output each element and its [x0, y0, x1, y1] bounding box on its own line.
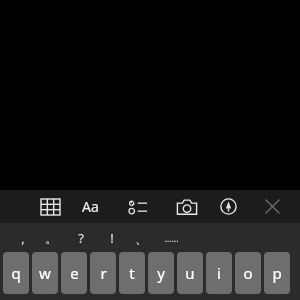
button[interactable]: u: [177, 252, 203, 294]
button[interactable]: t: [119, 252, 145, 294]
staticText: !: [110, 229, 114, 247]
button[interactable]: y: [148, 252, 174, 294]
button[interactable]: ,: [10, 223, 36, 252]
button[interactable]: Close: [255, 190, 289, 223]
staticText: e: [70, 263, 79, 283]
button[interactable]: ……: [158, 223, 184, 252]
staticText: ……: [164, 232, 179, 244]
staticText: r: [100, 263, 107, 283]
staticText: 。: [45, 230, 58, 246]
staticText: ,: [21, 229, 25, 247]
staticText: Aa: [82, 197, 99, 216]
button[interactable]: w: [32, 252, 58, 294]
button[interactable]: Checklist: [120, 190, 154, 223]
button[interactable]: i: [206, 252, 232, 294]
button[interactable]: Draw: [211, 190, 245, 223]
button[interactable]: r: [90, 252, 116, 294]
staticText: ?: [78, 229, 84, 247]
staticText: q: [11, 263, 21, 283]
button[interactable]: p: [264, 252, 290, 294]
button[interactable]: Insert table: [33, 190, 67, 223]
button[interactable]: ?: [68, 223, 94, 252]
button[interactable]: Camera: [170, 190, 204, 223]
staticText: i: [217, 263, 221, 283]
button[interactable]: q: [3, 252, 29, 294]
staticText: y: [157, 263, 165, 283]
staticText: 、: [135, 230, 148, 246]
button[interactable]: 。: [38, 223, 64, 252]
staticText: w: [39, 263, 51, 283]
button[interactable]: e: [61, 252, 87, 294]
button[interactable]: Aa: [73, 190, 107, 223]
button[interactable]: 、: [128, 223, 154, 252]
staticText: p: [272, 263, 282, 283]
button[interactable]: !: [99, 223, 125, 252]
staticText: u: [185, 263, 195, 283]
staticText: o: [243, 263, 253, 283]
staticText: t: [129, 263, 135, 283]
button[interactable]: o: [235, 252, 261, 294]
